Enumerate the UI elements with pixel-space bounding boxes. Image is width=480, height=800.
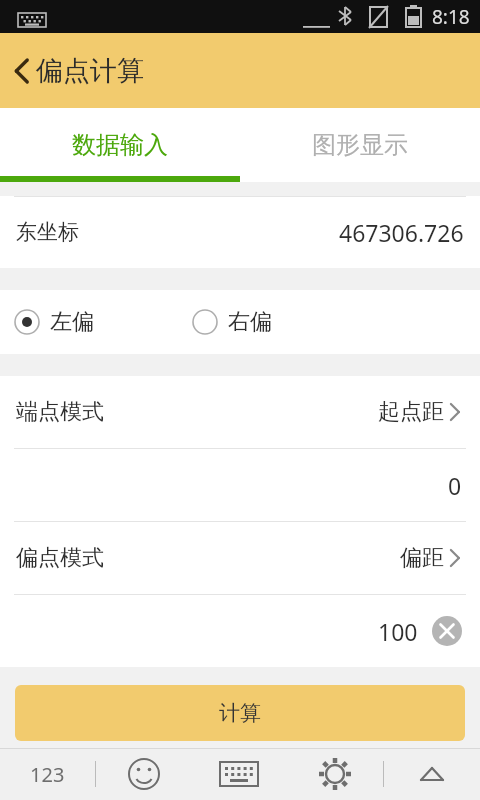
staticText: 左偏	[50, 308, 94, 336]
staticText: 图形显示	[312, 130, 408, 160]
staticText: 100	[378, 616, 418, 647]
button[interactable]: 左偏	[0, 300, 108, 344]
staticText: 数据输入	[72, 130, 168, 160]
staticText: 0	[448, 470, 462, 501]
button[interactable]: Keyboard	[191, 748, 287, 800]
staticText: 起点距	[378, 398, 444, 426]
staticText: 467306.726	[339, 217, 464, 248]
button[interactable]: 右偏	[178, 300, 286, 344]
button[interactable]: Clear	[432, 616, 462, 646]
button[interactable]: 东坐标	[0, 196, 480, 268]
staticText: 8:18	[432, 4, 470, 30]
button[interactable]: 图形显示	[240, 108, 480, 182]
button[interactable]: 0	[0, 449, 480, 521]
staticText: 偏点模式	[16, 544, 104, 572]
staticText: 端点模式	[16, 398, 104, 426]
staticText: 偏距	[400, 544, 444, 572]
staticText: 123	[30, 761, 65, 788]
button[interactable]: Numbers	[0, 748, 95, 800]
button[interactable]: 数据输入	[0, 108, 240, 182]
button[interactable]: 100	[0, 595, 480, 667]
staticText: 东坐标	[16, 219, 79, 245]
button[interactable]: Back	[0, 49, 44, 93]
button[interactable]: Emoji	[96, 748, 191, 800]
button[interactable]: Hide keyboard	[384, 748, 480, 800]
button[interactable]: 端点模式	[0, 376, 480, 448]
button[interactable]: 计算	[15, 685, 465, 741]
staticText: 右偏	[228, 308, 272, 336]
button[interactable]: Settings	[287, 748, 383, 800]
button[interactable]: 偏点模式	[0, 522, 480, 594]
staticText: 计算	[219, 700, 261, 726]
staticText: 偏点计算	[36, 54, 144, 88]
